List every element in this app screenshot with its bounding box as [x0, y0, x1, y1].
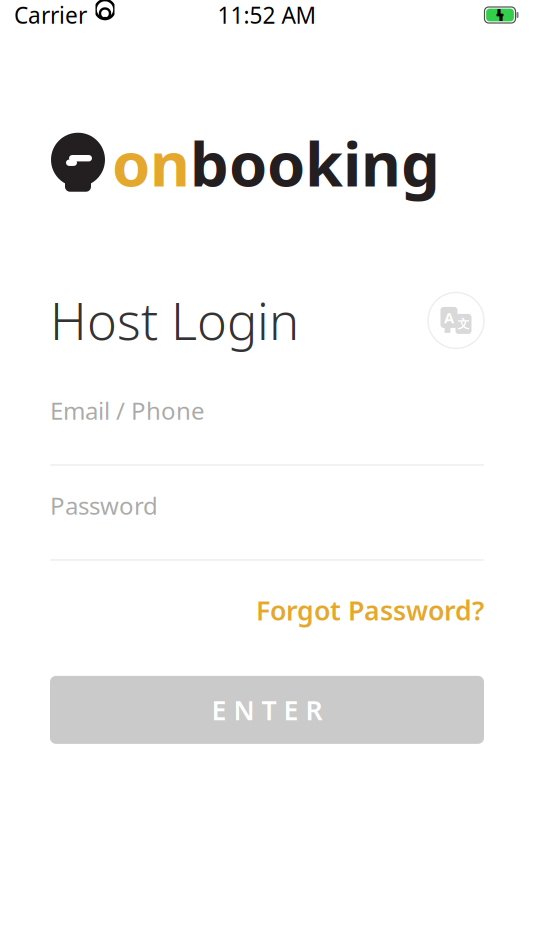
button[interactable]: Password	[50, 482, 484, 560]
staticText: E N T E R	[211, 692, 322, 728]
staticText: A	[444, 308, 454, 327]
button[interactable]: E N T E R	[50, 676, 484, 744]
staticText: Host Login	[50, 287, 299, 354]
button[interactable]: Forgot Password?	[256, 586, 484, 634]
staticText: 文	[457, 317, 469, 331]
staticText: Forgot Password?	[256, 592, 484, 628]
staticText: on	[112, 122, 190, 203]
staticText: booking	[190, 122, 440, 203]
staticText: 11:52 AM	[217, 0, 316, 30]
staticText: Carrier	[14, 0, 87, 30]
button[interactable]: Email / Phone	[50, 387, 484, 465]
staticText: Password	[50, 489, 158, 521]
button[interactable]: Change language	[428, 292, 484, 348]
staticText: Email / Phone	[50, 394, 205, 426]
